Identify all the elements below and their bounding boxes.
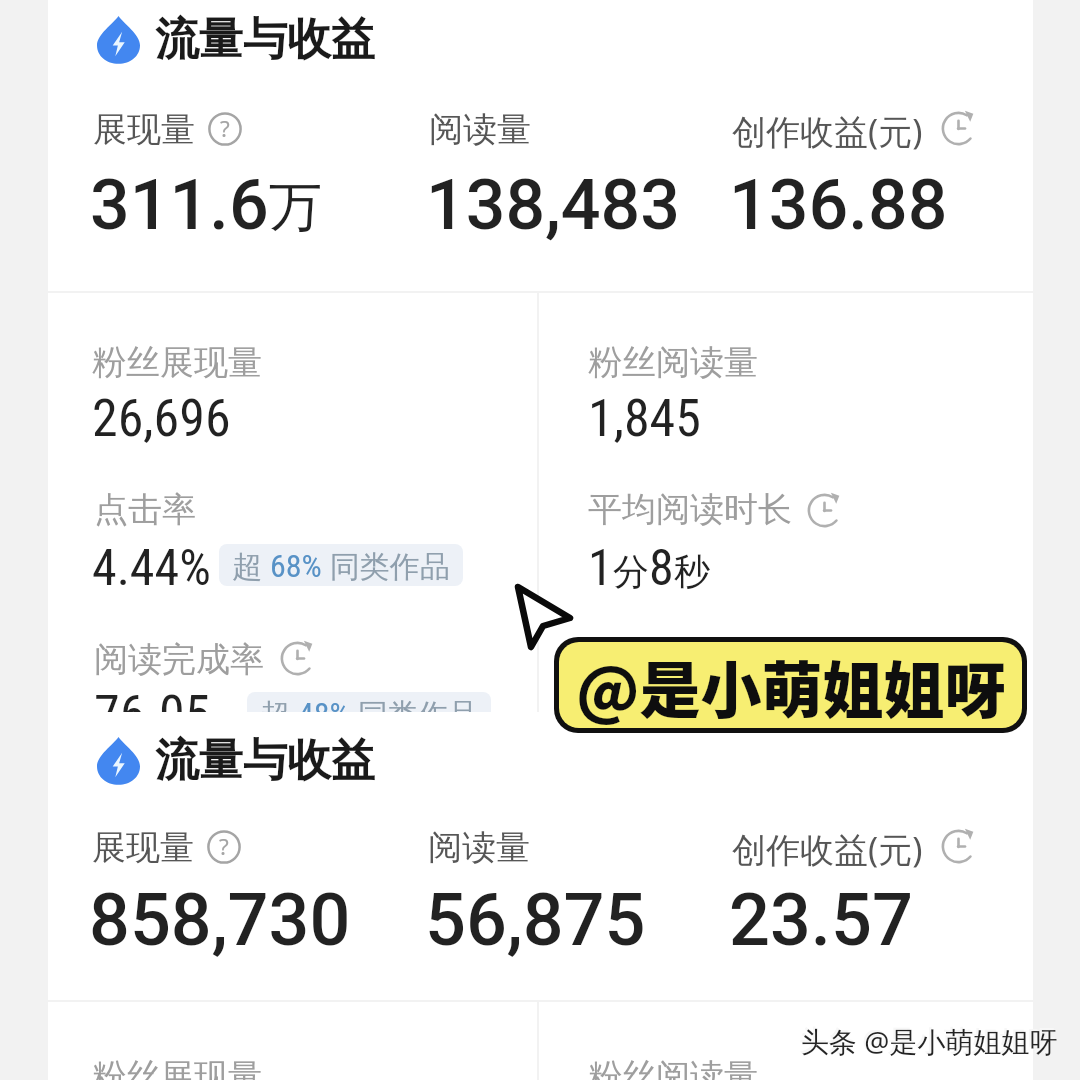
- staticText: 粉丝阅读量: [588, 1055, 758, 1080]
- staticText: 8: [649, 539, 674, 598]
- staticText: 48%: [298, 695, 350, 733]
- staticText: ?: [220, 113, 230, 144]
- staticText: 阅读量: [428, 826, 530, 869]
- button[interactable]: [60, 600, 530, 710]
- button[interactable]: 流量与收益: [48, 733, 1033, 791]
- other: Pointer: [0, 0, 1080, 1080]
- staticText: 创作收益(元): [732, 826, 923, 872]
- button[interactable]: [700, 96, 1030, 246]
- button[interactable]: [60, 450, 530, 595]
- staticText: 68%: [270, 547, 322, 585]
- staticText: 1: [588, 539, 613, 598]
- staticText: 23.57: [729, 878, 913, 962]
- staticText: 阅读量: [429, 108, 531, 151]
- staticText: ?: [219, 831, 229, 862]
- button[interactable]: [60, 1010, 530, 1080]
- staticText: 粉丝展现量: [92, 1055, 262, 1080]
- staticText: 138,483: [426, 164, 681, 246]
- staticText: 311.6: [90, 164, 269, 246]
- staticText: 粉丝展现量: [92, 341, 262, 384]
- button[interactable]: [60, 96, 390, 246]
- button[interactable]: [60, 300, 530, 445]
- button[interactable]: @是小萌姐姐呀: [559, 642, 1022, 728]
- staticText: 超: [260, 693, 298, 734]
- staticText: 56,875: [425, 878, 646, 962]
- button[interactable]: 流量与收益: [48, 12, 1033, 70]
- button[interactable]: [396, 96, 696, 246]
- staticText: 点击率: [94, 488, 196, 531]
- staticText: 分: [613, 549, 649, 594]
- staticText: @是小萌姐姐呀: [576, 642, 1006, 728]
- staticText: 同类作品: [350, 693, 478, 734]
- staticText: 阅读完成率: [94, 638, 264, 681]
- staticText: 流量与收益: [155, 12, 375, 67]
- button[interactable]: [546, 1010, 1026, 1080]
- other: Watermark: [799, 1020, 1056, 1058]
- staticText: 粉丝阅读量: [588, 341, 758, 384]
- staticText: 流量与收益: [155, 733, 375, 788]
- staticText: 平均阅读时长: [588, 488, 792, 531]
- button[interactable]: 超: [232, 544, 450, 586]
- staticText: 展现量: [92, 826, 194, 869]
- staticText: 头条 @是小萌姐姐呀: [799, 1020, 1056, 1058]
- button[interactable]: [546, 300, 1026, 445]
- button[interactable]: [700, 815, 1030, 965]
- staticText: 展现量: [93, 108, 195, 151]
- staticText: 秒: [674, 549, 710, 594]
- staticText: 创作收益(元): [732, 108, 923, 154]
- staticText: 4.44%: [92, 539, 211, 598]
- staticText: 136.88: [729, 164, 948, 246]
- button[interactable]: 超: [260, 692, 478, 734]
- button[interactable]: [60, 815, 390, 965]
- staticText: 76.05: [94, 684, 211, 745]
- staticText: 858,730: [89, 878, 351, 962]
- staticText: 1,845: [588, 388, 701, 449]
- staticText: 超: [232, 545, 270, 586]
- staticText: 26,696: [92, 388, 231, 449]
- staticText: 万: [269, 174, 322, 241]
- staticText: 同类作品: [322, 545, 450, 586]
- button[interactable]: [396, 815, 696, 965]
- button[interactable]: [546, 450, 1026, 595]
- staticText: 头条 @是小萌姐姐呀: [801, 1022, 1058, 1060]
